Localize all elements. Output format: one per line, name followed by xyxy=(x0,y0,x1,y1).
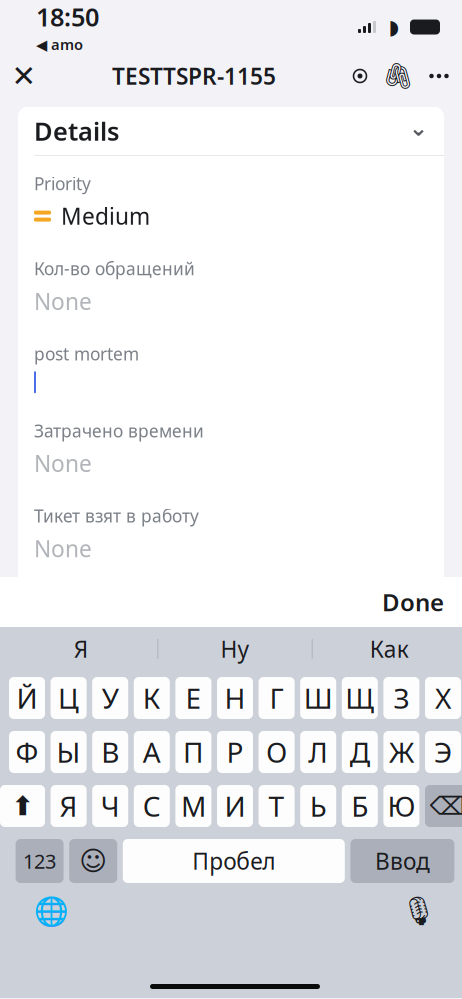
staticText: ⌫ xyxy=(429,792,462,820)
staticText: 🌐 xyxy=(33,895,68,927)
button[interactable]: Ну xyxy=(158,627,312,671)
button[interactable]: Dictation xyxy=(396,891,442,931)
button[interactable]: Close xyxy=(0,54,48,98)
button[interactable]: К xyxy=(134,677,170,719)
button[interactable]: Э xyxy=(425,731,461,773)
button[interactable]: Delete xyxy=(425,785,462,827)
button[interactable]: Как xyxy=(313,627,462,671)
button[interactable]: Details xyxy=(18,107,444,155)
button[interactable]: Next keyboard xyxy=(28,891,74,931)
staticText: None xyxy=(34,618,92,649)
staticText: А xyxy=(143,733,161,771)
staticText: Medium xyxy=(61,201,150,231)
button[interactable]: Г xyxy=(259,677,295,719)
button[interactable]: Ч xyxy=(92,785,128,827)
button[interactable]: Я xyxy=(51,785,87,827)
button[interactable]: Л xyxy=(300,731,336,773)
staticText: Ввод xyxy=(375,846,430,876)
button[interactable]: П xyxy=(175,731,211,773)
button[interactable]: Н xyxy=(217,677,253,719)
button[interactable]: Пробел xyxy=(123,839,345,883)
staticText: К xyxy=(143,679,161,717)
staticText: Г xyxy=(270,679,284,717)
button[interactable]: Ц xyxy=(51,677,87,719)
button[interactable]: Ш xyxy=(300,677,336,719)
button[interactable]: More xyxy=(416,54,462,98)
staticText: В xyxy=(101,733,119,771)
button[interactable]: Shift xyxy=(0,785,45,827)
button[interactable]: З xyxy=(383,677,419,719)
staticText: TESTTSPR-1155 xyxy=(112,61,276,91)
staticText: Р xyxy=(226,733,243,771)
staticText: ⬆ xyxy=(11,791,33,821)
staticText: ✕ xyxy=(11,59,36,93)
button[interactable]: Ю xyxy=(383,785,419,827)
staticText: 🎙 xyxy=(401,895,437,927)
staticText: У xyxy=(102,679,119,717)
button[interactable]: М xyxy=(175,785,211,827)
staticText: Ну xyxy=(220,634,249,664)
staticText: Ш xyxy=(304,679,333,717)
staticText: Ю xyxy=(387,787,415,825)
staticText: Б xyxy=(351,787,368,825)
staticText: Ж xyxy=(389,733,414,771)
staticText: 🖇 xyxy=(382,61,414,90)
staticText: Я xyxy=(60,787,78,825)
staticText: С xyxy=(143,787,161,825)
staticText: ◀ amo xyxy=(36,35,83,54)
staticText: О xyxy=(266,733,287,771)
button[interactable]: Emoji xyxy=(69,839,117,883)
button[interactable]: Ы xyxy=(51,731,87,773)
button[interactable]: И xyxy=(217,785,253,827)
staticText: 18:50 xyxy=(36,0,99,33)
staticText: Details xyxy=(34,114,119,148)
button[interactable]: Attach xyxy=(380,54,416,98)
button[interactable]: Щ xyxy=(342,677,378,719)
button[interactable]: Т xyxy=(259,785,295,827)
button[interactable]: Х xyxy=(425,677,461,719)
staticText: Э xyxy=(434,733,452,771)
staticText: Й xyxy=(16,679,37,717)
button[interactable]: 123 xyxy=(16,839,64,883)
button[interactable]: Ввод xyxy=(350,839,454,883)
button[interactable]: Б xyxy=(342,785,378,827)
staticText: Л xyxy=(308,733,328,771)
button[interactable]: Е xyxy=(175,677,211,719)
staticText: Д xyxy=(350,733,370,771)
staticText: Priority xyxy=(34,172,91,195)
staticText: Ф xyxy=(15,733,38,771)
staticText: Ь xyxy=(310,787,327,825)
staticText: Как xyxy=(370,634,409,664)
staticText: None xyxy=(34,448,92,478)
button[interactable]: Ф xyxy=(9,731,45,773)
staticText: Ы xyxy=(57,733,81,771)
button[interactable]: А xyxy=(134,731,170,773)
button[interactable]: Д xyxy=(342,731,378,773)
button[interactable]: В xyxy=(92,731,128,773)
staticText: Тикет взят в работу xyxy=(34,504,199,527)
staticText: Затрачено времени xyxy=(34,419,204,442)
button[interactable]: С xyxy=(134,785,170,827)
button[interactable]: Ж xyxy=(383,731,419,773)
staticText: Done xyxy=(382,586,444,618)
staticText: Е xyxy=(185,679,201,717)
staticText: П xyxy=(183,733,204,771)
staticText: 123 xyxy=(23,848,56,874)
staticText: None xyxy=(34,286,92,316)
staticText: Ц xyxy=(58,679,79,717)
button[interactable]: Я xyxy=(4,627,157,671)
button[interactable]: Й xyxy=(9,677,45,719)
button[interactable]: О xyxy=(259,731,295,773)
staticText: З xyxy=(393,679,409,717)
button[interactable]: У xyxy=(92,677,128,719)
button[interactable]: Ь xyxy=(300,785,336,827)
staticText: Кол-во обращений xyxy=(34,257,195,280)
staticText: post mortem xyxy=(34,342,139,365)
staticText: Ч xyxy=(101,787,120,825)
staticText: Н xyxy=(224,679,245,717)
button[interactable]: Done xyxy=(364,577,462,627)
button[interactable]: Watch xyxy=(340,54,380,98)
staticText: Щ xyxy=(345,679,374,717)
button[interactable]: Р xyxy=(217,731,253,773)
